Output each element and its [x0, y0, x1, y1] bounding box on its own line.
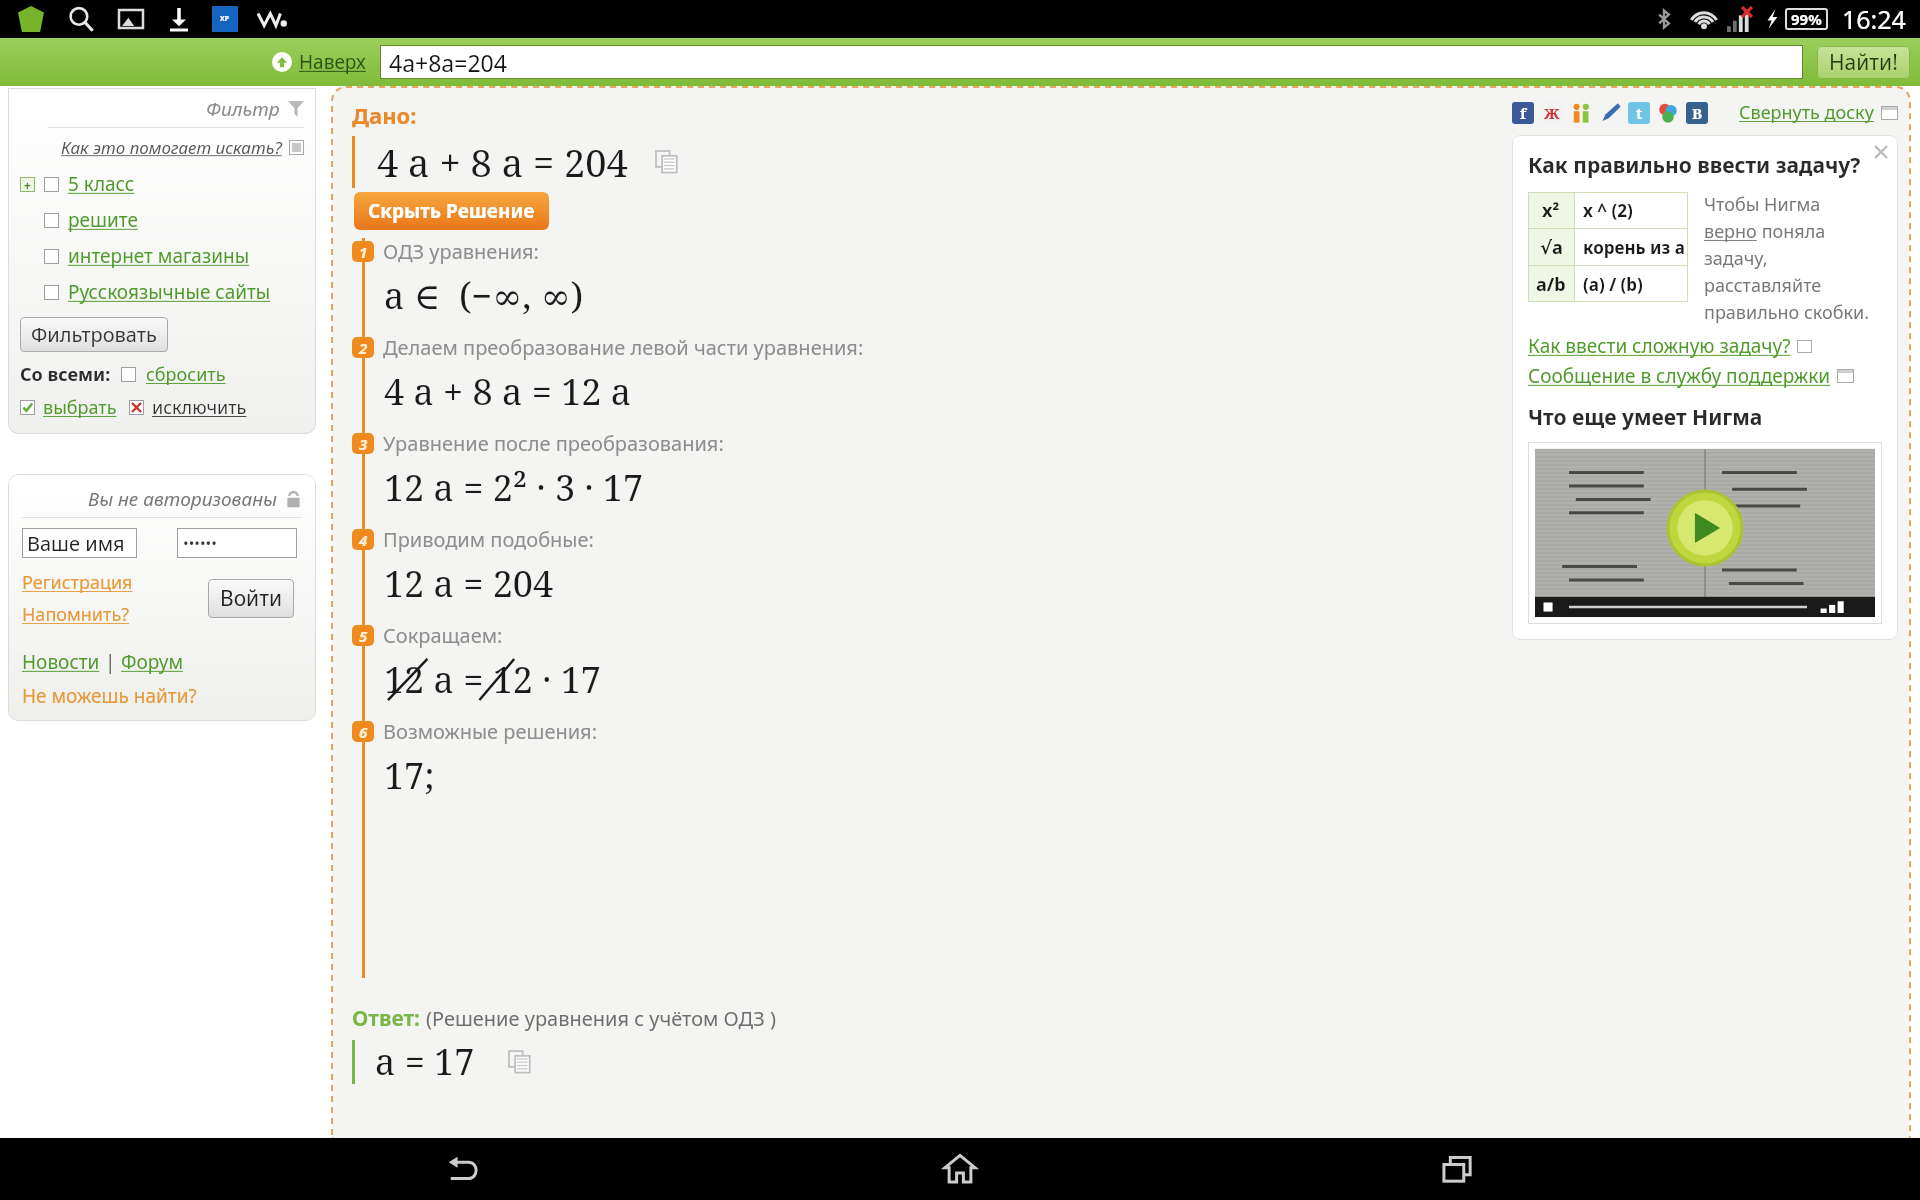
staticText: поняла: [1757, 219, 1826, 244]
staticText: Фильтровать: [31, 321, 157, 348]
button[interactable]: Войти: [208, 579, 294, 618]
button[interactable]: Фильтровать: [20, 317, 168, 352]
button[interactable]: Share: [1686, 102, 1708, 124]
staticText: 2: [359, 338, 368, 358]
staticText: Со всеми:: [20, 362, 111, 387]
button[interactable]: выбрать: [43, 395, 117, 420]
staticText: верно: [1704, 219, 1757, 244]
button[interactable]: исключить: [152, 395, 247, 420]
staticText: Дано:: [352, 100, 417, 130]
staticText: 3: [359, 434, 368, 454]
button[interactable]: Не можешь найти?: [22, 683, 197, 709]
button[interactable]: Найти!: [1817, 46, 1910, 79]
button[interactable]: [20, 400, 35, 415]
staticText: Сокращаем:: [383, 622, 503, 649]
staticText: √a: [1540, 235, 1563, 260]
button[interactable]: Edit: [1599, 102, 1621, 124]
staticText: |: [100, 649, 121, 675]
button[interactable]: Mail.ru: [1657, 102, 1679, 124]
button[interactable]: [44, 249, 59, 264]
button[interactable]: Home: [925, 1138, 995, 1200]
button[interactable]: Сообщение в службу поддержки: [1528, 363, 1831, 389]
staticText: (Решение уравнения с учётом ОДЗ ): [426, 1005, 776, 1032]
staticText: Наверх: [299, 49, 366, 75]
button[interactable]: Close: [1872, 143, 1890, 161]
staticText: x²: [1542, 198, 1560, 223]
button[interactable]: Copy: [656, 151, 678, 173]
staticText: 6: [359, 722, 368, 742]
button[interactable]: 4a+8a=204: [380, 45, 1803, 79]
button[interactable]: Copy: [509, 1051, 531, 1073]
staticText: Уравнение после преобразования:: [383, 430, 724, 457]
staticText: 4 a + 8 a = 12 a: [384, 367, 632, 416]
staticText: Вы не авторизованы: [88, 486, 277, 512]
staticText: a = 17: [375, 1037, 475, 1086]
button[interactable]: Recent apps: [1423, 1138, 1493, 1200]
staticText: Найти!: [1829, 48, 1898, 77]
staticText: Скрыть Решение: [368, 198, 535, 224]
staticText: 17;: [384, 751, 435, 800]
button[interactable]: решите: [68, 207, 138, 233]
button[interactable]: [44, 177, 59, 192]
staticText: Фильтр: [206, 96, 280, 122]
button[interactable]: Наверх: [268, 45, 370, 79]
staticText: Приводим подобные:: [383, 526, 594, 553]
button[interactable]: Share: [1512, 102, 1534, 124]
button[interactable]: Русскоязычные сайты: [68, 279, 271, 305]
staticText: Как правильно ввести задачу?: [1528, 151, 1861, 180]
button[interactable]: Odnoklassniki: [1570, 102, 1592, 124]
staticText: 12 a = 12 · 17: [384, 655, 601, 704]
button[interactable]: Как это помогает искать?: [61, 136, 282, 159]
button[interactable]: Share: [1628, 102, 1650, 124]
button[interactable]: Регистрация: [22, 570, 133, 595]
staticText: t: [1636, 103, 1643, 123]
button[interactable]: [44, 285, 59, 300]
staticText: x ^ (2): [1583, 199, 1633, 222]
staticText: Ж: [1544, 103, 1560, 123]
staticText: Что еще умеет Нигма: [1528, 403, 1763, 432]
button[interactable]: [44, 213, 59, 228]
staticText: ОДЗ уравнения:: [383, 238, 539, 265]
button[interactable]: Back: [428, 1138, 498, 1200]
button[interactable]: [121, 367, 136, 382]
staticText: Ответ:: [352, 1004, 420, 1033]
staticText: 4a+8a=204: [389, 47, 507, 78]
button[interactable]: Play video: [1535, 449, 1875, 617]
button[interactable]: Как ввести сложную задачу?: [1528, 333, 1791, 359]
staticText: 1: [359, 242, 368, 262]
staticText: f: [1520, 103, 1527, 123]
button[interactable]: Напомнить?: [22, 602, 130, 627]
staticText: Возможные решения:: [383, 718, 598, 745]
staticText: a ∈ (−∞, ∞): [384, 271, 584, 320]
staticText: правильно скобки.: [1704, 300, 1870, 325]
staticText: Чтобы Нигма: [1704, 192, 1821, 217]
staticText: корень из a: [1583, 236, 1685, 259]
staticText: XP: [220, 14, 230, 24]
staticText: 99%: [1791, 9, 1822, 29]
button[interactable]: Скрыть Решение: [354, 192, 549, 230]
button[interactable]: [129, 400, 144, 415]
button[interactable]: Свернуть доску: [1739, 100, 1874, 125]
button[interactable]: Форум: [121, 649, 184, 675]
staticText: 4: [359, 530, 368, 550]
staticText: 16:24: [1842, 2, 1906, 36]
button[interactable]: интернет магазины: [68, 243, 250, 269]
button[interactable]: Ваше имя: [22, 528, 137, 558]
staticText: 12 a = 204: [384, 559, 554, 608]
staticText: Делаем преобразование левой части уравне…: [383, 334, 864, 361]
staticText: Ваше имя: [27, 530, 125, 557]
button[interactable]: Share: [1541, 102, 1563, 124]
button[interactable]: +: [20, 177, 35, 192]
staticText: расставляйте: [1704, 273, 1822, 298]
button[interactable]: Новости: [22, 649, 100, 675]
staticText: 4 a + 8 a = 204: [377, 136, 628, 188]
staticText: (a) / (b): [1583, 273, 1643, 296]
button[interactable]: сбросить: [146, 362, 226, 387]
staticText: Войти: [220, 584, 282, 613]
button[interactable]: ••••••: [177, 528, 297, 558]
staticText: +: [24, 177, 31, 192]
staticText: a/b: [1536, 272, 1566, 297]
staticText: задачу,: [1704, 246, 1768, 271]
staticText: 12 a = 2² · 3 · 17: [384, 463, 644, 512]
button[interactable]: 5 класс: [68, 171, 135, 197]
